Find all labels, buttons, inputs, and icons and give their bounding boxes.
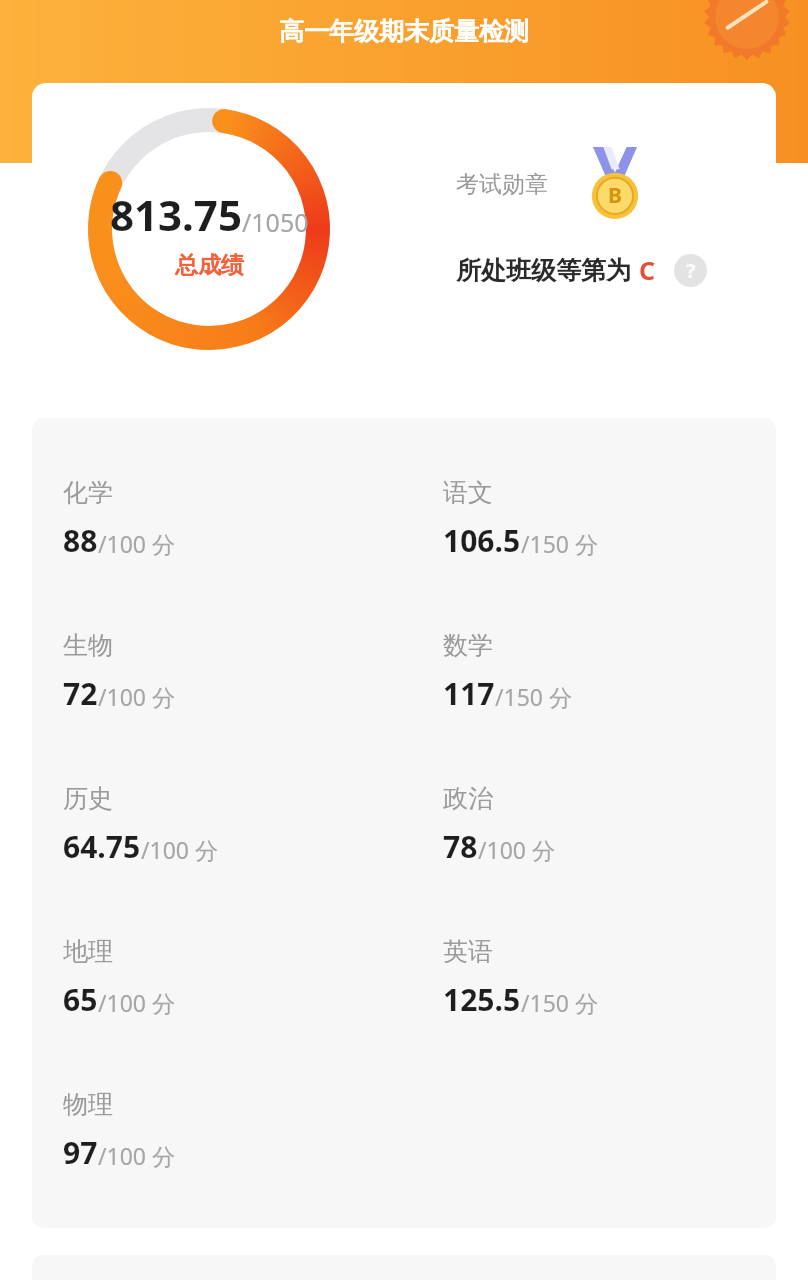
staticText: 高一年级期末质量检测: [0, 16, 808, 47]
staticText: 生物: [63, 630, 113, 661]
staticText: /150 分: [521, 528, 599, 559]
button[interactable]: 地理: [63, 936, 403, 1020]
staticText: 97: [63, 1132, 98, 1173]
staticText: C: [639, 253, 656, 287]
button[interactable]: 生物: [63, 630, 403, 714]
button[interactable]: 语文: [443, 477, 776, 561]
staticText: 总成绩: [175, 251, 244, 280]
staticText: /100 分: [98, 987, 176, 1018]
staticText: 72: [63, 673, 98, 714]
staticText: 考试勋章: [456, 170, 548, 199]
button[interactable]: 所处班级等第为: [456, 253, 707, 287]
staticText: 语文: [443, 477, 493, 508]
staticText: 117: [443, 673, 495, 714]
staticText: 88: [63, 520, 98, 561]
staticText: /100 分: [478, 834, 556, 865]
button[interactable]: 813.75: [32, 83, 776, 375]
staticText: /100 分: [98, 528, 176, 559]
staticText: 125.5: [443, 979, 521, 1020]
staticText: /100 分: [98, 681, 176, 712]
staticText: 政治: [443, 783, 493, 814]
staticText: /100 分: [141, 834, 219, 865]
button[interactable]: 物理: [63, 1089, 403, 1173]
staticText: /100 分: [98, 1140, 176, 1171]
staticText: 78: [443, 826, 478, 867]
button[interactable]: 考试勋章: [456, 147, 644, 221]
button[interactable]: 历史: [63, 783, 403, 867]
staticText: 64.75: [63, 826, 141, 867]
staticText: 所处班级等第为: [456, 255, 631, 286]
button[interactable]: 化学: [63, 477, 403, 561]
staticText: 106.5: [443, 520, 521, 561]
staticText: 65: [63, 979, 98, 1020]
staticText: 化学: [63, 477, 113, 508]
staticText: 物理: [63, 1089, 113, 1120]
staticText: /150 分: [495, 681, 573, 712]
staticText: 英语: [443, 936, 493, 967]
staticText: 历史: [63, 783, 113, 814]
staticText: ?: [686, 257, 696, 284]
button[interactable]: 英语: [443, 936, 776, 1020]
staticText: 地理: [63, 936, 113, 967]
staticText: 813.75: [110, 186, 242, 243]
button[interactable]: 政治: [443, 783, 776, 867]
button[interactable]: 数学: [443, 630, 776, 714]
staticText: /1050: [242, 205, 309, 239]
button[interactable]: 帮助说明: [674, 254, 707, 287]
staticText: 数学: [443, 630, 493, 661]
staticText: B: [608, 181, 622, 210]
staticText: /150 分: [521, 987, 599, 1018]
